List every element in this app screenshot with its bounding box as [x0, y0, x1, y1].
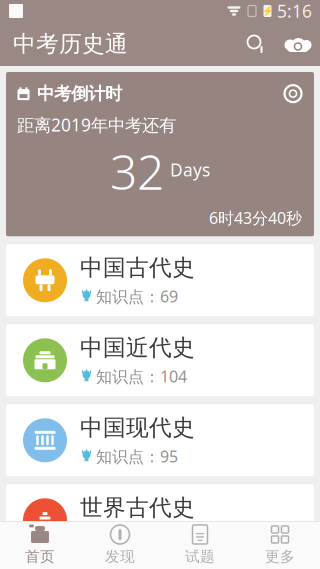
staticText: Days [170, 158, 210, 181]
button[interactable]: 更多 [240, 521, 320, 569]
staticText: 知识点：69 [96, 286, 178, 307]
staticText: 知识点：47 [96, 526, 178, 547]
staticText: 知识点：104 [96, 366, 187, 387]
staticText: 32 [110, 139, 164, 203]
button[interactable]: 设置 [283, 84, 303, 104]
button[interactable]: 世界古代史 [6, 484, 314, 556]
button[interactable]: 首页 [0, 521, 80, 569]
button[interactable]: 发现 [80, 521, 160, 569]
staticText: 中考历史通 [13, 30, 128, 58]
staticText: 中考倒计时 [37, 83, 122, 104]
button[interactable]: 同步 [276, 22, 320, 66]
staticText: 中国近代史 [80, 334, 195, 362]
staticText: 发现 [105, 547, 135, 565]
button[interactable]: 试题 [160, 521, 240, 569]
staticText: 中国现代史 [80, 414, 195, 442]
staticText: 5:16 [277, 0, 312, 22]
staticText: 距离2019年中考还有 [17, 113, 176, 136]
button[interactable]: 中国现代史 [6, 404, 314, 476]
staticText: 知识点：95 [96, 446, 178, 467]
staticText: 试题 [185, 547, 215, 565]
staticText: ⚡ [261, 6, 273, 16]
staticText: 6时43分40秒 [209, 207, 302, 228]
staticText: 首页 [25, 547, 55, 565]
button[interactable]: 搜索 [236, 22, 276, 66]
button[interactable]: 中国近代史 [6, 324, 314, 396]
staticText: 中国古代史 [80, 254, 195, 282]
staticText: 更多 [265, 547, 295, 565]
button[interactable]: 中国古代史 [6, 244, 314, 316]
staticText: 世界古代史 [80, 494, 195, 522]
